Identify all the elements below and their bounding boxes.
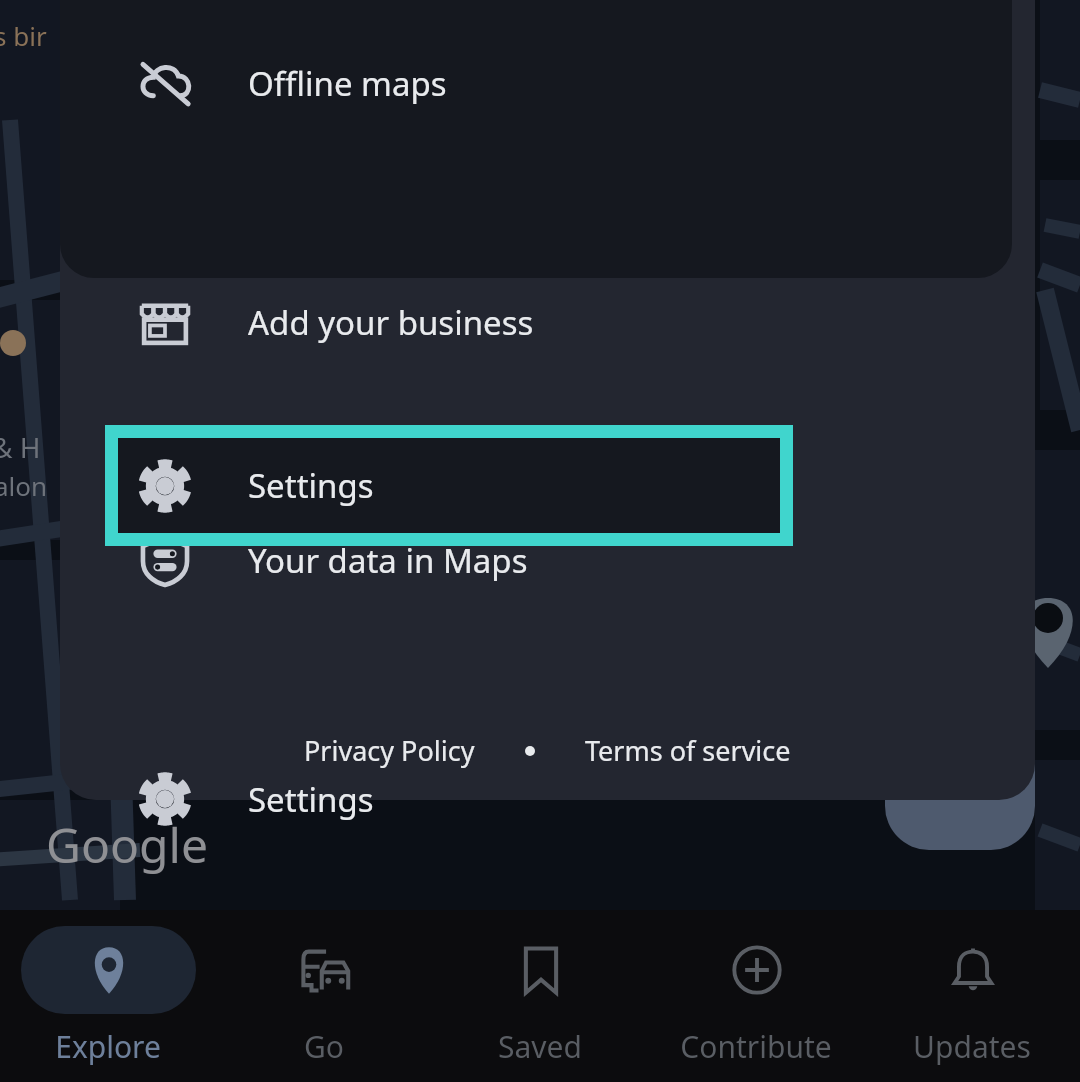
staticText: Your data in Maps [248,538,528,583]
button[interactable]: Explore [0,910,216,1082]
staticText: Help and feedback [248,1016,538,1061]
button[interactable]: Privacy Policy [298,726,481,775]
other: Explore [82,943,136,997]
button[interactable]: Add your business [0,269,1080,375]
button[interactable]: Saved [432,910,648,1082]
staticText: Privacy Policy [304,732,475,769]
staticText: Saved [498,1026,582,1067]
staticText: Updates [913,1026,1031,1067]
staticText: s bir [0,18,47,53]
staticText: Google [46,812,209,877]
staticText: Explore [55,1026,161,1067]
button[interactable]: Updates [864,910,1080,1082]
staticText: Terms of service [585,732,791,769]
staticText: Contribute [680,1026,832,1067]
button[interactable]: Your data in Maps [0,507,1080,613]
staticText: Offline maps [248,61,447,106]
other: Saved [514,943,568,997]
button[interactable]: Go [216,910,432,1082]
other: Go [298,943,352,997]
button[interactable]: Offline maps [0,30,1080,136]
button[interactable]: Contribute [648,910,864,1082]
other: Contribute [730,943,784,997]
button[interactable]: Terms of service [579,726,797,775]
button[interactable]: Settings [0,746,1080,852]
staticText: Settings [248,777,374,822]
other: Updates [946,943,1000,997]
button[interactable]: Settings [118,438,780,533]
staticText: alon [0,468,48,503]
button[interactable]: Help and feedback [0,985,1080,1082]
staticText: Settings [248,463,374,508]
staticText: Go [304,1026,344,1067]
staticText: & H [0,428,41,466]
staticText: Add your business [248,300,534,345]
